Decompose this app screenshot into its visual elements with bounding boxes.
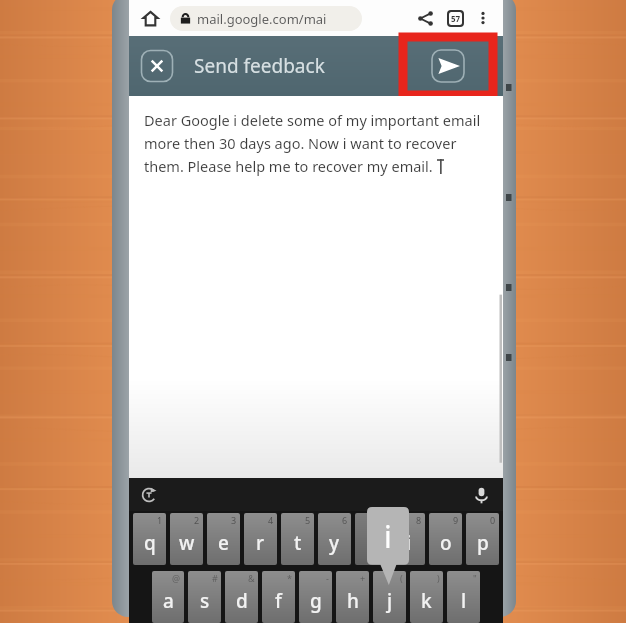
button[interactable]: +: [336, 571, 369, 623]
staticText: e: [218, 530, 229, 556]
staticText: -: [326, 572, 329, 584]
staticText: r: [256, 530, 265, 556]
button[interactable]: 7: [355, 513, 388, 565]
button[interactable]: 2: [170, 513, 203, 565]
staticText: *: [287, 572, 292, 584]
button[interactable]: ): [410, 571, 443, 623]
staticText: f: [275, 588, 282, 614]
button[interactable]: 5: [281, 513, 314, 565]
staticText: 9: [453, 514, 459, 526]
staticText: 0: [490, 514, 496, 526]
staticText: g: [310, 588, 322, 614]
staticText: p: [477, 530, 489, 556]
button[interactable]: 3: [207, 513, 240, 565]
button[interactable]: 4: [244, 513, 277, 565]
staticText: 2: [194, 514, 200, 526]
staticText: 57: [451, 13, 461, 24]
staticText: d: [236, 588, 248, 614]
staticText: s: [200, 588, 210, 614]
staticText: 3: [231, 514, 237, 526]
staticText: 5: [305, 514, 311, 526]
button[interactable]: Close: [138, 47, 176, 85]
button[interactable]: @: [152, 571, 184, 623]
button[interactable]: *: [262, 571, 295, 623]
button[interactable]: Refresh suggestions: [136, 482, 162, 508]
button[interactable]: ": [447, 571, 480, 623]
staticText: l: [461, 588, 467, 614]
staticText: a: [163, 588, 174, 614]
staticText: h: [347, 588, 359, 614]
button[interactable]: mail.google.com/mai: [170, 6, 362, 31]
button[interactable]: Send feedback: [428, 46, 468, 86]
staticText: @: [172, 572, 181, 584]
staticText: more then 30 days ago. Now i want to rec…: [144, 133, 457, 153]
staticText: 4: [268, 514, 274, 526]
button[interactable]: #: [188, 571, 221, 623]
staticText: ": [473, 572, 477, 584]
staticText: mail.google.com/mai: [197, 10, 327, 28]
staticText: +: [360, 572, 366, 584]
staticText: 8: [416, 514, 422, 526]
staticText: them. Please help me to recover my email…: [144, 156, 433, 176]
button[interactable]: 1: [133, 513, 166, 565]
button[interactable]: -: [299, 571, 332, 623]
staticText: Dear Google i delete some of my importan…: [144, 110, 481, 130]
staticText: t: [294, 530, 302, 556]
staticText: u: [366, 530, 378, 556]
button[interactable]: 8: [392, 513, 425, 565]
button[interactable]: 9: [429, 513, 462, 565]
staticText: o: [440, 530, 452, 556]
staticText: w: [179, 530, 195, 556]
button[interactable]: Voice input: [468, 482, 494, 508]
staticText: q: [144, 530, 156, 556]
button[interactable]: &: [225, 571, 258, 623]
staticText: &: [248, 572, 255, 584]
button[interactable]: 0: [466, 513, 499, 565]
staticText: k: [421, 588, 432, 614]
button[interactable]: Tabs: [440, 3, 470, 33]
staticText: 6: [342, 514, 348, 526]
staticText: j: [387, 588, 393, 614]
staticText: Send feedback: [194, 53, 325, 79]
staticText: ): [437, 572, 440, 584]
staticText: i: [406, 530, 412, 556]
staticText: (: [400, 572, 403, 584]
button[interactable]: (: [373, 571, 406, 623]
button[interactable]: Home: [136, 4, 164, 32]
staticText: i: [384, 516, 392, 557]
staticText: #: [212, 572, 218, 584]
button[interactable]: Share: [410, 3, 440, 33]
button[interactable]: More options: [470, 5, 496, 31]
staticText: y: [329, 530, 340, 556]
staticText: 1: [157, 514, 163, 526]
button[interactable]: 6: [318, 513, 351, 565]
